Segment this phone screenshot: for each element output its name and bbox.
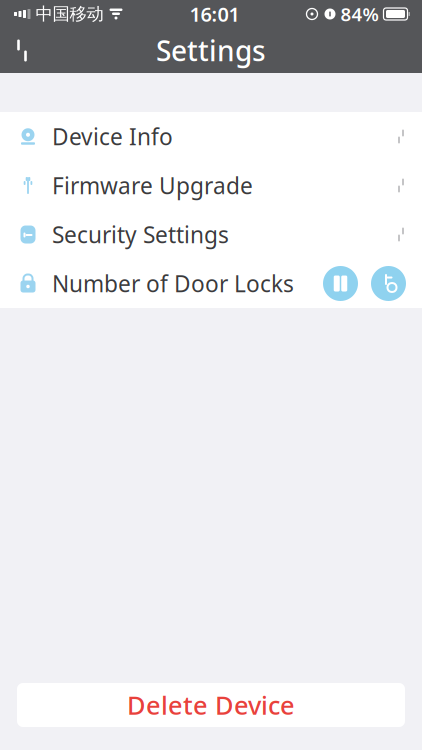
button[interactable]: Delete Device	[17, 683, 405, 727]
staticText: 84%	[340, 2, 378, 26]
staticText: Number of Door Locks	[52, 268, 294, 298]
button[interactable]: Firmware Upgrade	[0, 161, 422, 210]
staticText: Device Info	[52, 121, 173, 151]
staticText: Firmware Upgrade	[52, 170, 253, 200]
staticText: 中国移动	[35, 3, 103, 25]
staticText: Settings	[156, 32, 266, 69]
staticText: 16:01	[189, 1, 239, 27]
button[interactable]: Single door lock	[371, 266, 406, 301]
button[interactable]: Device Info	[0, 112, 422, 161]
staticText: Delete Device	[127, 688, 295, 722]
button[interactable]: Back	[0, 28, 44, 73]
button[interactable]: Security Settings	[0, 210, 422, 259]
button[interactable]: Double door lock	[323, 266, 358, 301]
staticText: Security Settings	[52, 219, 229, 249]
